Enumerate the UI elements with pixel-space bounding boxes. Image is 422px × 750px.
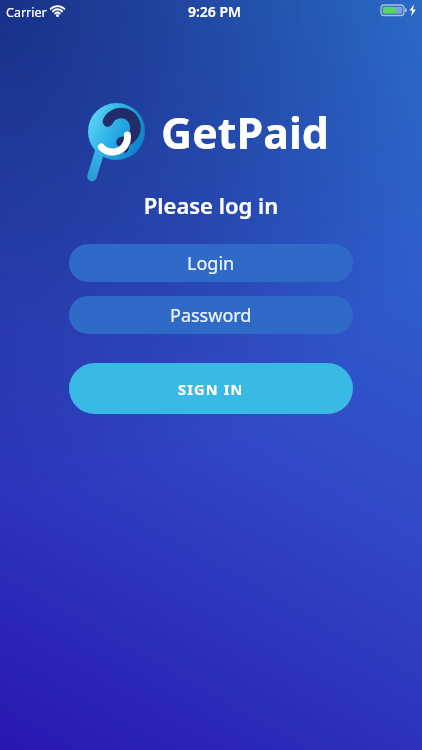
staticText: Please log in (0, 190, 422, 220)
button[interactable]: Password (69, 296, 353, 334)
staticText: SIGN IN (178, 379, 244, 399)
staticText: 9:26 PM (7, 2, 422, 21)
staticText: Login (187, 251, 235, 276)
staticText: GetPaid (161, 103, 329, 162)
button[interactable]: SIGN IN (69, 363, 353, 414)
staticText: Carrier (6, 4, 47, 21)
button[interactable]: Login (69, 244, 353, 282)
staticText: Password (170, 303, 252, 328)
